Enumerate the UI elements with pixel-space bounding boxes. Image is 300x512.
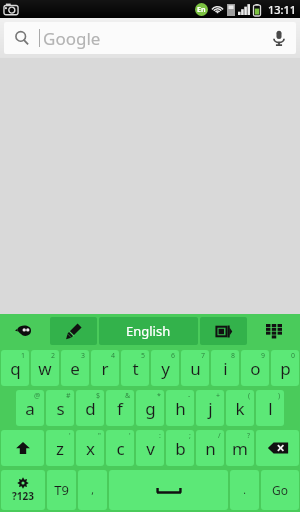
button[interactable]: 9 — [241, 350, 269, 386]
staticText: ) — [278, 391, 281, 401]
button[interactable]: $ — [76, 390, 104, 426]
button[interactable]: 5 — [121, 350, 149, 386]
staticText: En — [197, 5, 206, 15]
staticText: 13:11 — [268, 2, 297, 17]
button[interactable]: 2 — [31, 350, 59, 386]
button[interactable]: Shift — [1, 430, 44, 466]
button[interactable]: . — [230, 470, 259, 510]
staticText: w — [38, 357, 52, 380]
button[interactable]: Keypad — [248, 314, 300, 348]
staticText: @ — [34, 391, 41, 401]
button[interactable]: Layout — [200, 317, 247, 345]
staticText: f — [117, 397, 123, 420]
staticText: 6 — [171, 351, 176, 361]
staticText: ? — [247, 431, 251, 441]
staticText: . — [243, 483, 246, 497]
staticText: 7 — [201, 351, 206, 361]
staticText: m — [232, 437, 248, 460]
button[interactable]: 4 — [91, 350, 119, 386]
button[interactable]: ? — [226, 430, 254, 466]
button[interactable]: : — [136, 430, 164, 466]
staticText: s — [56, 397, 65, 420]
button[interactable]: Space — [109, 470, 228, 510]
staticText: 3 — [81, 351, 86, 361]
staticText: h — [175, 397, 186, 420]
button[interactable]: 7 — [181, 350, 209, 386]
staticText: d — [85, 397, 96, 420]
button[interactable]: T9 — [47, 470, 76, 510]
button[interactable]: 1 — [1, 350, 29, 386]
staticText: # — [66, 391, 71, 401]
button[interactable]: Go — [261, 470, 299, 510]
staticText: 0 — [291, 351, 296, 361]
button[interactable]: / — [196, 430, 224, 466]
staticText: Google — [43, 27, 101, 50]
button[interactable]: # — [46, 390, 74, 426]
staticText: c — [116, 437, 125, 460]
staticText: 2 — [51, 351, 56, 361]
button[interactable]: ; — [166, 430, 194, 466]
staticText: * — [157, 391, 161, 401]
staticText: 9 — [261, 351, 266, 361]
staticText: e — [70, 357, 80, 380]
staticText: u — [190, 357, 201, 380]
staticText: , — [91, 483, 94, 497]
staticText: k — [235, 397, 245, 420]
staticText: " — [98, 431, 101, 441]
staticText: - — [188, 391, 191, 401]
staticText: 4 — [111, 351, 116, 361]
staticText: n — [205, 437, 216, 460]
staticText: 5 — [141, 351, 146, 361]
staticText: y — [161, 357, 170, 380]
button[interactable]: ' — [106, 430, 134, 466]
staticText: + — [216, 391, 221, 401]
staticText: l — [268, 397, 273, 420]
button[interactable]: English — [99, 317, 198, 345]
staticText: r — [101, 357, 109, 380]
button[interactable]: - — [166, 390, 194, 426]
staticText: j — [208, 397, 213, 420]
button[interactable]: Backspace — [256, 430, 299, 466]
staticText: $ — [96, 391, 101, 401]
button[interactable]: Emoji — [0, 314, 49, 348]
staticText: 8 — [231, 351, 236, 361]
staticText: 1 — [21, 351, 26, 361]
button[interactable]: Symbols — [1, 470, 45, 510]
staticText: & — [125, 391, 131, 401]
button[interactable]: Google — [4, 22, 296, 54]
staticText: ' — [129, 431, 131, 441]
button[interactable]: 0 — [271, 350, 299, 386]
button[interactable]: @ — [16, 390, 44, 426]
staticText: a — [25, 397, 35, 420]
staticText: b — [175, 437, 186, 460]
staticText: ' — [69, 431, 71, 441]
staticText: i — [223, 357, 228, 380]
staticText: p — [280, 357, 291, 380]
staticText: v — [146, 437, 155, 460]
button[interactable]: 3 — [61, 350, 89, 386]
button[interactable]: " — [76, 430, 104, 466]
staticText: o — [250, 357, 261, 380]
button[interactable]: Voice search — [262, 22, 296, 54]
button[interactable]: & — [106, 390, 134, 426]
button[interactable]: * — [136, 390, 164, 426]
button[interactable]: 6 — [151, 350, 179, 386]
staticText: English — [126, 322, 171, 340]
staticText: ?123 — [12, 489, 34, 503]
staticText: / — [218, 431, 221, 441]
staticText: g — [145, 397, 156, 420]
staticText: z — [56, 437, 64, 460]
button[interactable]: Edit — [50, 317, 97, 345]
button[interactable]: + — [196, 390, 224, 426]
button[interactable]: ' — [46, 430, 74, 466]
button[interactable]: ) — [256, 390, 284, 426]
button[interactable]: 8 — [211, 350, 239, 386]
staticText: q — [10, 357, 21, 380]
button[interactable]: ( — [226, 390, 254, 426]
staticText: x — [86, 437, 95, 460]
staticText: : — [159, 431, 161, 441]
staticText: t — [132, 357, 139, 380]
button[interactable]: , — [78, 470, 107, 510]
staticText: ; — [189, 431, 191, 441]
staticText: T9 — [54, 481, 69, 499]
